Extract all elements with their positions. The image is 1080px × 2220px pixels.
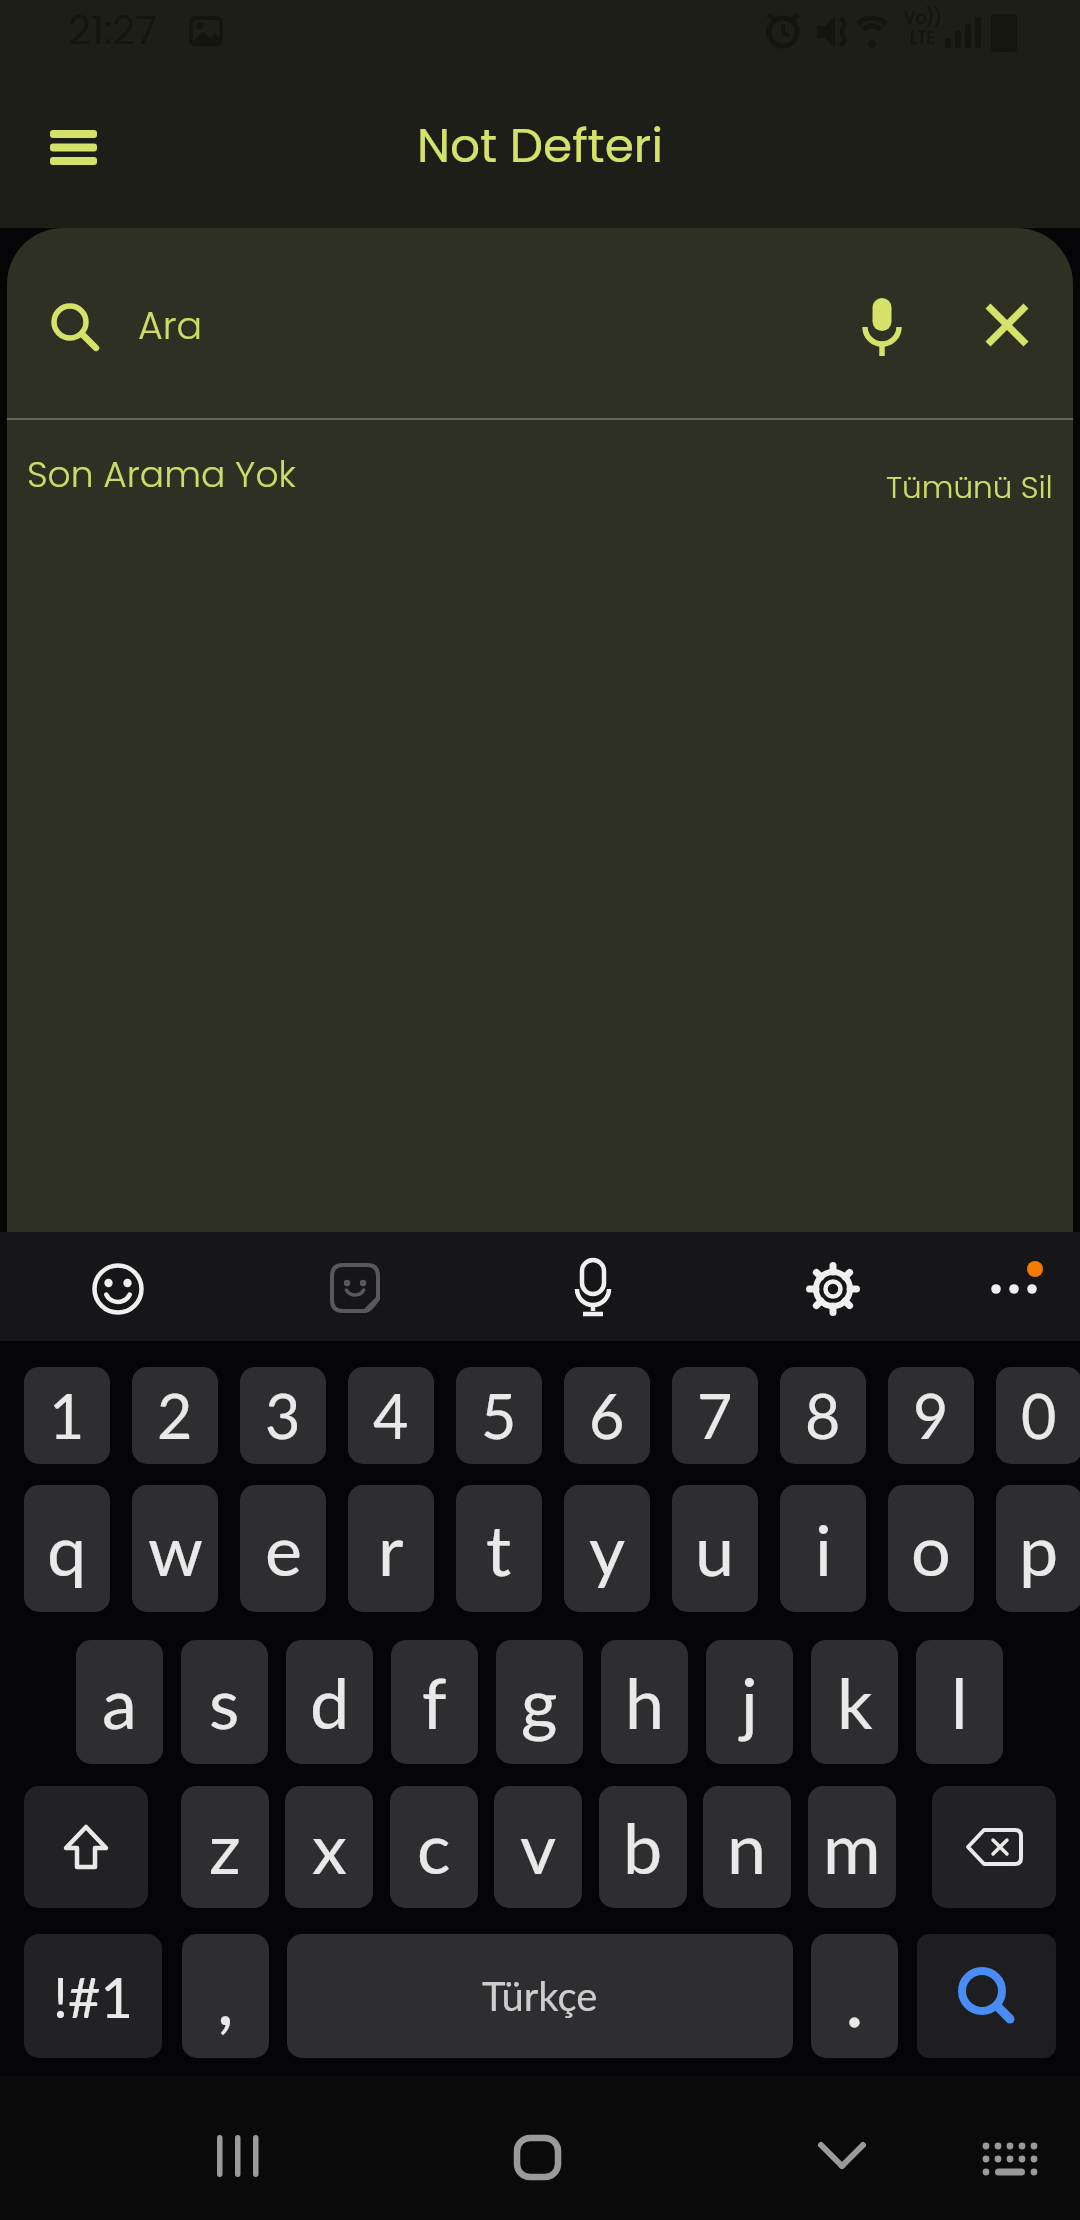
staticText: y [589,1507,626,1591]
button[interactable]: f [391,1640,478,1764]
button[interactable]: . [811,1934,898,2058]
staticText: 5 [481,1379,517,1452]
staticText: n [727,1805,767,1889]
staticText: LTE [910,26,936,50]
button[interactable]: 3 [240,1367,326,1464]
button[interactable]: r [348,1485,434,1612]
staticText: e [265,1507,302,1591]
staticText: 1 [49,1379,85,1452]
staticText: Ara [138,299,203,352]
button[interactable]: 0 [996,1367,1080,1464]
staticText: v [520,1805,557,1889]
staticText: Türkçe [482,1972,598,2020]
button[interactable]: Türkçe [287,1934,793,2058]
button[interactable] [852,288,912,362]
button[interactable]: m [808,1786,896,1908]
staticText: p [1019,1507,1059,1591]
staticText: k [837,1660,873,1744]
button[interactable]: y [564,1485,650,1612]
staticText: a [102,1660,137,1744]
button[interactable]: z [181,1786,269,1908]
button[interactable]: x [285,1786,373,1908]
button[interactable] [24,1786,148,1908]
button[interactable]: Tümünü Sil [773,460,1073,512]
staticText: Not Defteri [417,113,663,179]
staticText: 3 [265,1379,301,1452]
button[interactable] [982,2142,1038,2176]
staticText: h [625,1660,665,1744]
button[interactable] [917,1934,1056,2058]
staticText: u [695,1507,735,1591]
button[interactable] [818,2142,866,2172]
staticText: r [378,1507,404,1591]
button[interactable]: 2 [132,1367,218,1464]
staticText: g [521,1660,558,1744]
button[interactable]: 9 [888,1367,974,1464]
button[interactable]: a [76,1640,163,1764]
button[interactable]: n [703,1786,791,1908]
button[interactable] [985,1257,1047,1302]
button[interactable]: 8 [780,1367,866,1464]
button[interactable]: 4 [348,1367,434,1464]
staticText: 6 [589,1379,625,1452]
staticText: c [417,1805,451,1889]
staticText: 0 [1021,1379,1057,1452]
button[interactable] [7,268,1073,384]
button[interactable]: o [888,1485,974,1612]
button[interactable] [514,2135,561,2180]
button[interactable] [90,1261,146,1317]
staticText: d [310,1660,350,1744]
button[interactable]: u [672,1485,758,1612]
button[interactable]: s [181,1640,268,1764]
button[interactable]: 5 [456,1367,542,1464]
staticText: Vo)) [904,6,942,30]
button[interactable]: , [182,1934,269,2058]
staticText: . [845,1948,864,2044]
button[interactable] [569,1258,617,1320]
button[interactable] [988,306,1026,344]
button[interactable] [807,1263,859,1315]
button[interactable] [214,2134,260,2178]
staticText: m [823,1805,881,1889]
button[interactable]: !#1 [24,1934,162,2058]
staticText: 2 [157,1379,193,1452]
button[interactable]: d [286,1640,373,1764]
button[interactable] [932,1786,1056,1908]
staticText: o [911,1507,951,1591]
staticText: w [148,1507,203,1591]
staticText: 4 [373,1379,409,1452]
staticText: 8 [805,1379,841,1452]
button[interactable]: p [996,1485,1080,1612]
button[interactable]: e [240,1485,326,1612]
button[interactable]: k [811,1640,898,1764]
button[interactable]: g [496,1640,583,1764]
button[interactable]: b [599,1786,687,1908]
staticText: s [209,1660,240,1744]
button[interactable]: 6 [564,1367,650,1464]
staticText: b [623,1805,663,1889]
staticText: !#1 [53,1963,134,2030]
staticText: l [951,1660,968,1744]
staticText: z [209,1805,241,1889]
staticText: Son Arama Yok [27,449,296,499]
button[interactable]: c [390,1786,478,1908]
button[interactable]: h [601,1640,688,1764]
button[interactable]: w [132,1485,218,1612]
staticText: f [422,1660,447,1744]
button[interactable]: 7 [672,1367,758,1464]
button[interactable] [330,1263,382,1315]
staticText: t [486,1507,512,1591]
button[interactable]: q [24,1485,110,1612]
staticText: Tümünü Sil [886,465,1053,508]
button[interactable]: i [780,1485,866,1612]
button[interactable]: j [706,1640,793,1764]
button[interactable]: v [494,1786,582,1908]
staticText: 9 [913,1379,949,1452]
button[interactable]: 1 [24,1367,110,1464]
button[interactable]: l [916,1640,1003,1764]
staticText: i [815,1507,832,1591]
button[interactable] [50,130,98,166]
staticText: x [312,1805,347,1889]
button[interactable]: t [456,1485,542,1612]
